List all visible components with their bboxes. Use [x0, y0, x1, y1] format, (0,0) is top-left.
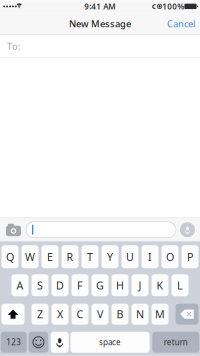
button[interactable]: T — [81, 245, 98, 268]
button[interactable]: R — [61, 245, 78, 268]
button[interactable]: P — [181, 245, 198, 268]
button[interactable]: V — [91, 304, 108, 325]
button[interactable]: To: — [0, 35, 200, 58]
staticText: N — [136, 307, 144, 321]
staticText: New Message — [69, 18, 131, 30]
staticText: X — [57, 307, 63, 321]
button[interactable]: S — [31, 274, 48, 296]
button[interactable]: Y — [101, 245, 118, 268]
staticText: O — [166, 250, 174, 264]
button[interactable]: Z — [31, 304, 48, 325]
staticText: Cancel — [167, 18, 195, 30]
staticText: R — [66, 250, 73, 264]
button[interactable]: Dictate — [51, 332, 69, 353]
staticText: I — [148, 250, 152, 264]
staticText: space — [99, 337, 121, 347]
button[interactable]: I — [141, 245, 158, 268]
staticText: U — [126, 250, 134, 264]
staticText: P — [187, 250, 193, 264]
staticText: 123 — [6, 337, 21, 347]
button[interactable]: C — [71, 304, 88, 325]
staticText: Y — [107, 250, 113, 264]
staticText: L — [177, 278, 183, 292]
button[interactable]: L — [171, 274, 188, 296]
staticText: C — [76, 307, 83, 321]
staticText: E — [47, 250, 53, 264]
button[interactable]: Camera — [0, 222, 22, 237]
staticText: Q — [6, 250, 14, 264]
staticText: F — [77, 278, 83, 292]
button[interactable]: O — [161, 245, 178, 268]
staticText: return — [164, 337, 188, 347]
button[interactable]: Shift — [1, 304, 24, 325]
staticText: 9:41 AM — [84, 1, 115, 12]
button[interactable]: A — [11, 274, 28, 296]
staticText: H — [116, 278, 124, 292]
button[interactable]: H — [111, 274, 128, 296]
button[interactable]: J — [131, 274, 148, 296]
button[interactable]: 123 — [1, 332, 27, 353]
staticText: D — [56, 278, 64, 292]
button[interactable]: G — [91, 274, 108, 296]
button[interactable]: U — [121, 245, 138, 268]
button[interactable]: F — [71, 274, 88, 296]
button[interactable]: E — [41, 245, 58, 268]
staticText: Z — [37, 307, 43, 321]
button[interactable]: D — [51, 274, 68, 296]
staticText: To: — [7, 40, 21, 52]
staticText: K — [156, 278, 163, 292]
button[interactable]: X — [51, 304, 68, 325]
staticText: W — [25, 250, 35, 264]
button[interactable]: space — [70, 332, 149, 353]
button[interactable]: B — [111, 304, 128, 325]
staticText: J — [138, 278, 141, 292]
button[interactable]: W — [21, 245, 38, 268]
staticText: T — [87, 250, 93, 264]
staticText: G — [96, 278, 104, 292]
staticText: M — [155, 307, 165, 321]
button[interactable]: return — [152, 332, 199, 353]
button[interactable]: Emoji — [29, 332, 48, 353]
button[interactable]: Delete — [175, 304, 198, 325]
button[interactable]: N — [131, 304, 148, 325]
button[interactable]: M — [151, 304, 168, 325]
staticText: A — [16, 278, 23, 292]
staticText: B — [116, 307, 123, 321]
button[interactable]: Q — [1, 245, 18, 268]
staticText: V — [97, 307, 103, 321]
button[interactable]: K — [151, 274, 168, 296]
button[interactable]: Cancel — [167, 13, 200, 35]
staticText: S — [37, 278, 43, 292]
button[interactable]: Record audio — [180, 222, 200, 237]
staticText: 100% — [162, 1, 184, 12]
